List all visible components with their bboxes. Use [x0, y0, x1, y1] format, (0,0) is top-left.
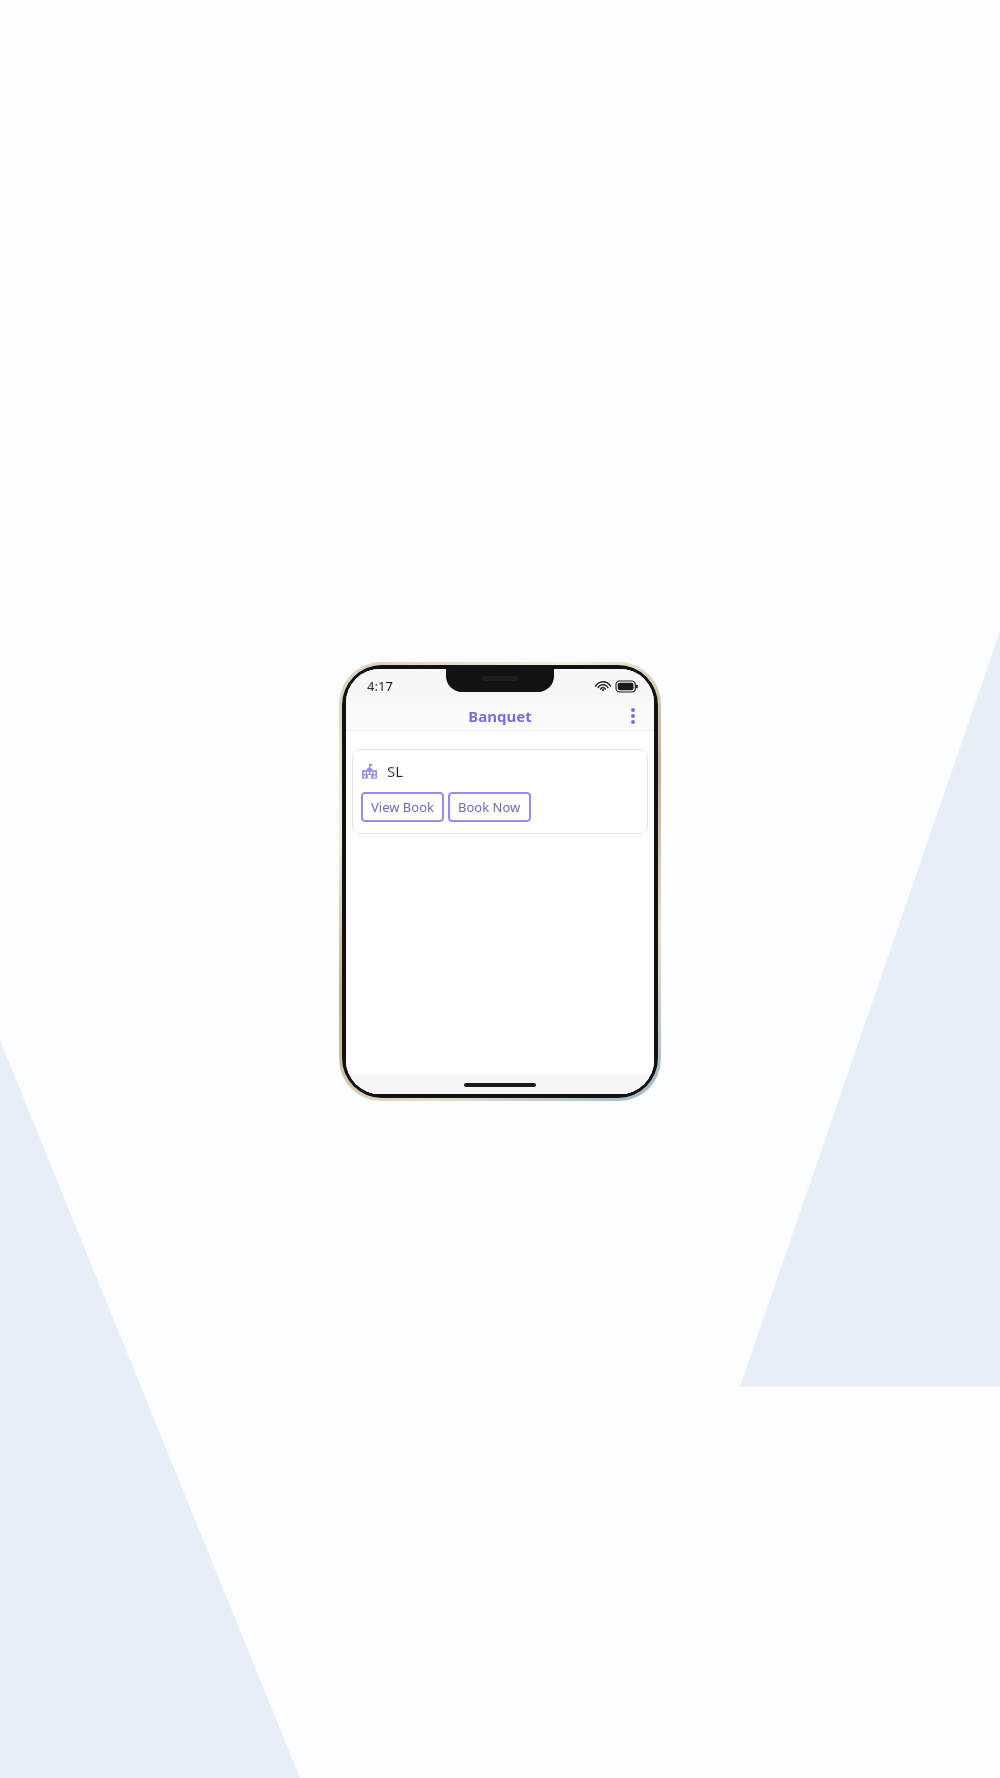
staticText: Banquet — [468, 706, 532, 726]
button[interactable]: View Book — [361, 792, 444, 822]
staticText: SL — [387, 761, 404, 781]
button[interactable]: More options — [618, 701, 648, 731]
staticText: Book Now — [458, 798, 521, 816]
button[interactable]: SL — [352, 749, 648, 834]
staticText: 4:17 — [367, 677, 393, 695]
staticText: View Book — [371, 798, 434, 816]
button[interactable]: Book Now — [448, 792, 531, 822]
